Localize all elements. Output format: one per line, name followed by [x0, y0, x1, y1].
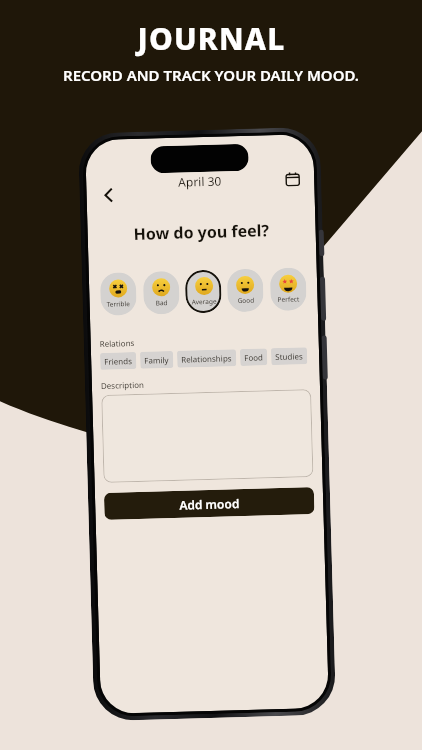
staticText: Terrible	[106, 299, 131, 309]
button[interactable]: Friends	[100, 352, 136, 370]
button[interactable]: Terrible	[99, 271, 138, 316]
staticText: Food	[244, 351, 263, 363]
button[interactable]: Food	[240, 348, 267, 366]
staticText: Add mood	[179, 495, 240, 513]
staticText: How do you feel?	[133, 219, 270, 245]
staticText: Good	[237, 296, 255, 305]
staticText: Relations	[100, 337, 135, 349]
staticText: Perfect	[277, 294, 300, 304]
button[interactable]: Bad	[142, 270, 181, 315]
button[interactable]: Add mood	[104, 487, 315, 520]
button[interactable]: Studies	[271, 347, 307, 365]
staticText: JOURNAL	[137, 18, 286, 59]
staticText: Family	[144, 354, 169, 366]
button[interactable]: Calendar	[280, 166, 304, 191]
button[interactable]: Back	[94, 180, 123, 209]
button[interactable]: Average	[184, 268, 223, 313]
staticText: Studies	[275, 350, 303, 362]
button[interactable]: Good	[226, 267, 265, 312]
staticText: Friends	[104, 355, 132, 367]
staticText: RECORD AND TRACK YOUR DAILY MOOD.	[63, 65, 359, 85]
staticText: Bad	[155, 298, 168, 307]
button[interactable]: Relationships	[177, 349, 236, 368]
button[interactable]	[101, 389, 313, 483]
button[interactable]: Perfect	[269, 266, 308, 311]
staticText: April 30	[178, 172, 222, 190]
staticText: Description	[101, 379, 145, 391]
button[interactable]: Family	[140, 351, 173, 369]
staticText: Average	[191, 297, 217, 306]
staticText: Relationships	[181, 352, 232, 365]
